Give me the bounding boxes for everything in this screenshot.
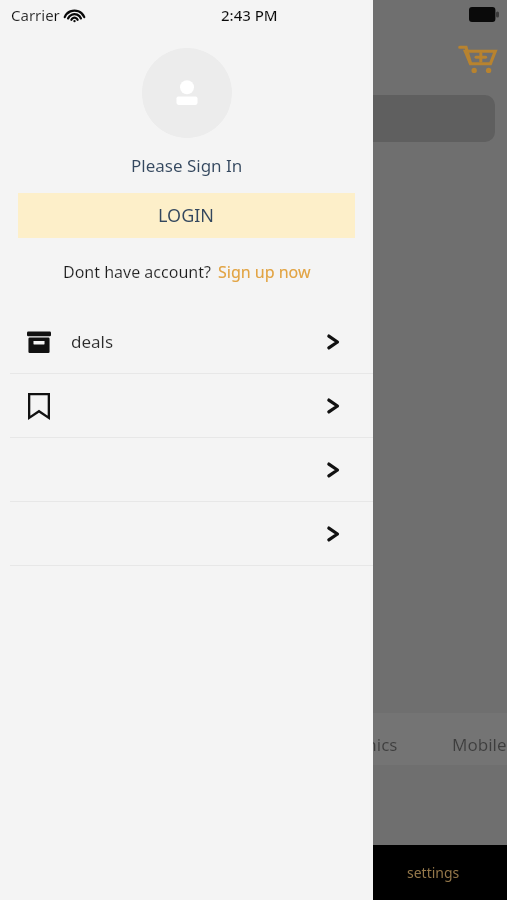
button[interactable]: Mobile bbox=[452, 731, 507, 757]
button[interactable]: Profile avatar bbox=[142, 48, 232, 138]
button[interactable]: LOGIN bbox=[18, 193, 355, 238]
staticText: Sign up now bbox=[218, 261, 311, 283]
staticText: settings bbox=[407, 863, 460, 882]
button[interactable]: Menu item bbox=[0, 502, 373, 565]
button[interactable]: onics bbox=[356, 731, 398, 757]
button[interactable]: Cart bbox=[459, 42, 496, 75]
button[interactable]: Sign up now bbox=[218, 261, 311, 283]
staticText: Mobile bbox=[452, 733, 507, 756]
button[interactable]: deals bbox=[0, 310, 373, 373]
staticText: Dont have account? bbox=[63, 261, 211, 283]
button[interactable]: Please Sign In bbox=[0, 154, 373, 177]
button[interactable]: settings bbox=[0, 845, 507, 900]
staticText: 2:43 PM bbox=[221, 5, 278, 25]
staticText: Carrier bbox=[11, 5, 60, 25]
staticText: deals bbox=[71, 330, 114, 353]
staticText: onics bbox=[356, 733, 398, 756]
button[interactable]: Search bbox=[320, 95, 495, 142]
staticText: LOGIN bbox=[158, 203, 215, 228]
button[interactable]: Menu item bbox=[0, 374, 373, 437]
button[interactable]: Menu item bbox=[0, 438, 373, 501]
staticText: Please Sign In bbox=[131, 154, 243, 177]
